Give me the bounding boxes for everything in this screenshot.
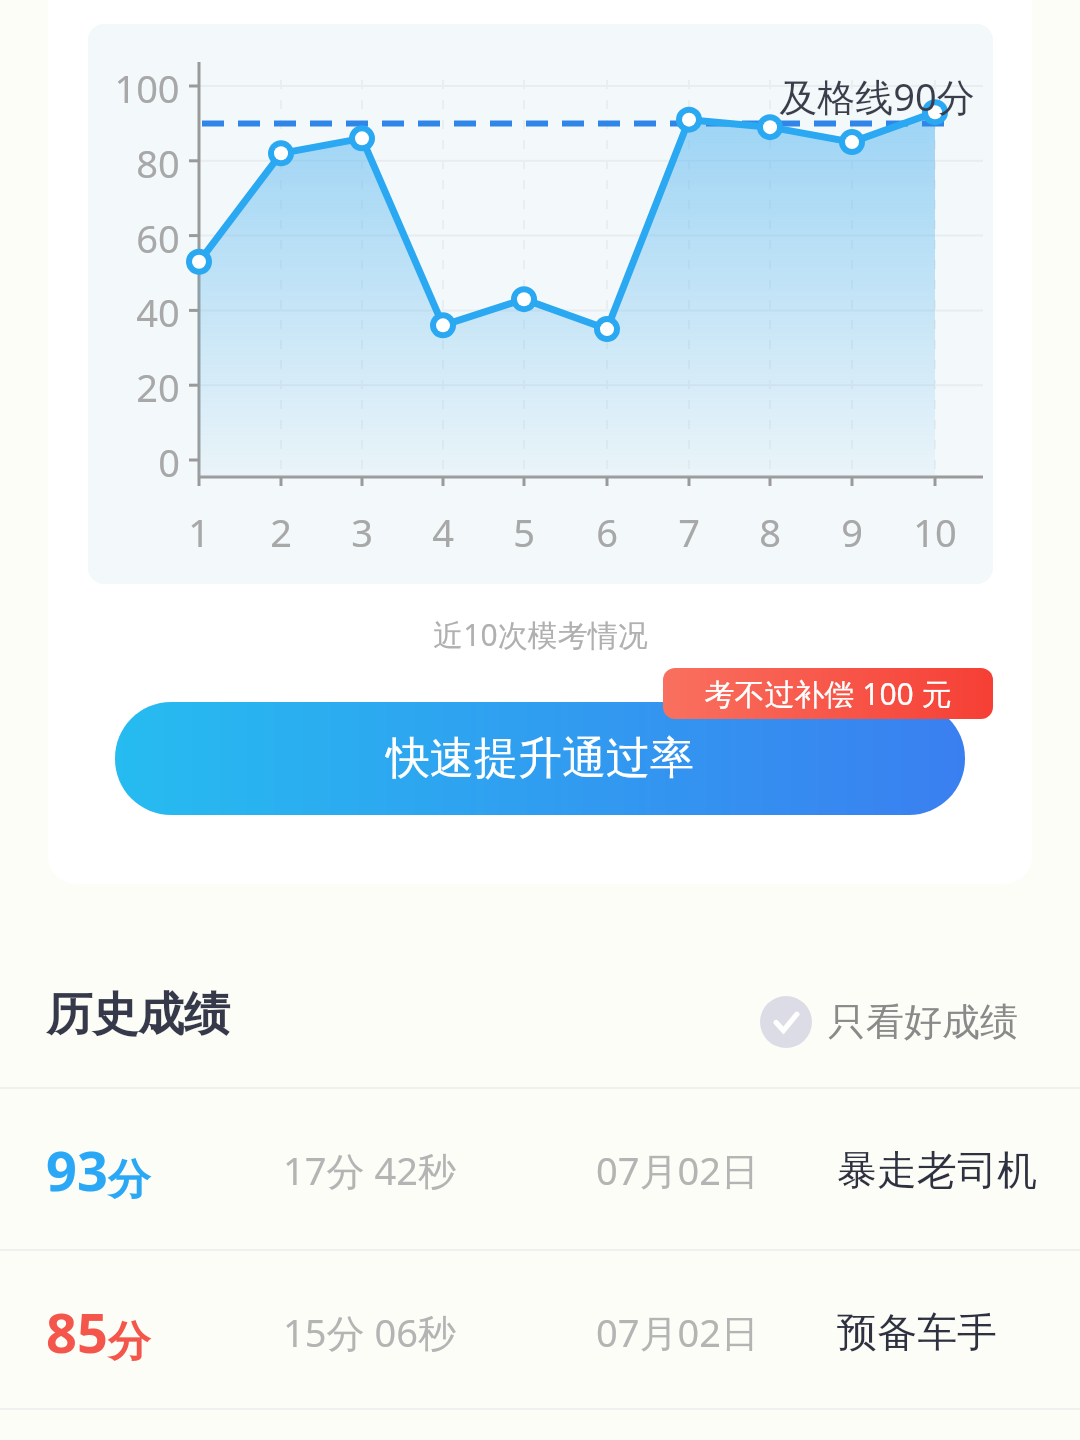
button[interactable]: 只看好成绩 [760, 996, 1018, 1048]
staticText: 60 [136, 212, 180, 264]
staticText: 分 [108, 1316, 150, 1369]
staticText: 7 [678, 506, 700, 558]
staticText: 快速提升通过率 [386, 731, 694, 786]
staticText: 9 [841, 506, 863, 558]
staticText: 8 [759, 506, 781, 558]
staticText: 只看好成绩 [828, 998, 1018, 1046]
button[interactable]: 快速提升通过率 [115, 702, 965, 815]
staticText: 考不过补偿 100 元 [704, 673, 952, 714]
staticText: 17分 42秒 [283, 1144, 456, 1196]
staticText: 分 [108, 1154, 150, 1207]
staticText: 15分 06秒 [283, 1306, 456, 1358]
staticText: 1 [188, 506, 210, 558]
staticText: 07月02日 [596, 1144, 759, 1196]
staticText: 近10次模考情况 [433, 614, 648, 655]
staticText: 10 [913, 506, 957, 558]
staticText: 20 [136, 361, 180, 413]
staticText: 预备车手 [837, 1307, 997, 1357]
staticText: 40 [136, 286, 180, 338]
staticText: 07月02日 [596, 1306, 759, 1358]
staticText: 2 [270, 506, 292, 558]
button[interactable]: 考不过补偿 100 元 [663, 668, 993, 719]
button[interactable]: 93 [0, 1090, 1080, 1249]
staticText: 5 [513, 506, 535, 558]
staticText: 100 [114, 62, 180, 114]
staticText: 4 [432, 506, 454, 558]
staticText: 93 [46, 1133, 108, 1207]
staticText: 历史成绩 [46, 986, 230, 1044]
staticText: 暴走老司机 [837, 1145, 1037, 1195]
staticText: 3 [351, 506, 373, 558]
staticText: 6 [596, 506, 618, 558]
staticText: 0 [158, 436, 180, 488]
button[interactable]: 85 [0, 1252, 1080, 1411]
staticText: 85 [46, 1295, 108, 1369]
staticText: 80 [136, 137, 180, 189]
staticText: 及格线90分 [779, 70, 975, 122]
